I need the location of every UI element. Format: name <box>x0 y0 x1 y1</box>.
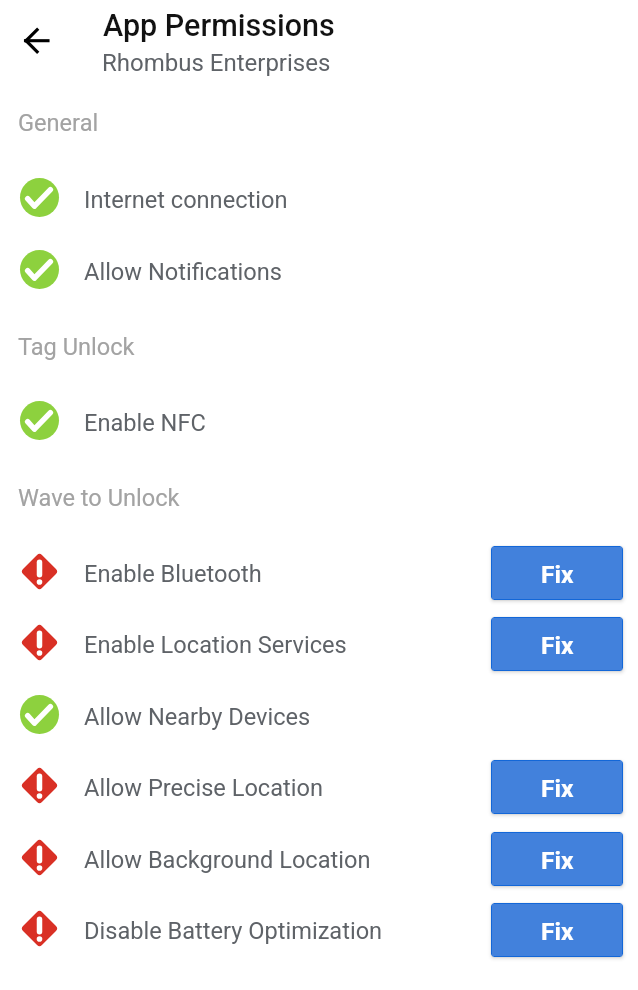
button[interactable]: Allow Notifications <box>0 243 638 315</box>
button[interactable]: Allow Precise Location <box>0 759 638 831</box>
button[interactable]: Allow Nearby Devices <box>0 688 638 760</box>
button[interactable]: Enable NFC <box>0 394 638 466</box>
button[interactable]: Enable Location Services <box>0 616 638 688</box>
staticText: Rhombus Enterprises <box>102 49 331 77</box>
staticText: Fix <box>541 560 574 589</box>
button[interactable]: Allow Background Location <box>0 831 638 903</box>
button[interactable]: Fix <box>492 904 622 956</box>
button[interactable]: Navigate back <box>10 15 62 67</box>
button[interactable]: Fix <box>492 761 622 813</box>
staticText: Fix <box>541 774 574 803</box>
button[interactable]: Enable Bluetooth <box>0 545 638 617</box>
button[interactable]: Disable Battery Optimization <box>0 902 638 974</box>
staticText: Internet connection <box>84 186 288 214</box>
staticText: General <box>18 109 99 137</box>
staticText: App Permissions <box>103 8 335 44</box>
button[interactable]: Fix <box>492 547 622 599</box>
staticText: Allow Precise Location <box>84 774 323 802</box>
staticText: Allow Nearby Devices <box>84 703 311 731</box>
button[interactable]: Fix <box>492 618 622 670</box>
staticText: Fix <box>541 917 574 946</box>
staticText: Fix <box>541 631 574 660</box>
staticText: Enable NFC <box>84 409 206 437</box>
staticText: Disable Battery Optimization <box>84 917 383 945</box>
staticText: Enable Location Services <box>84 631 347 659</box>
staticText: Allow Background Location <box>84 846 371 874</box>
staticText: Allow Notifications <box>84 258 283 286</box>
staticText: Enable Bluetooth <box>84 560 262 588</box>
staticText: Tag Unlock <box>18 333 135 361</box>
button[interactable]: Fix <box>492 833 622 885</box>
staticText: Wave to Unlock <box>18 484 180 512</box>
button[interactable]: Internet connection <box>0 171 638 243</box>
staticText: Fix <box>541 846 574 875</box>
